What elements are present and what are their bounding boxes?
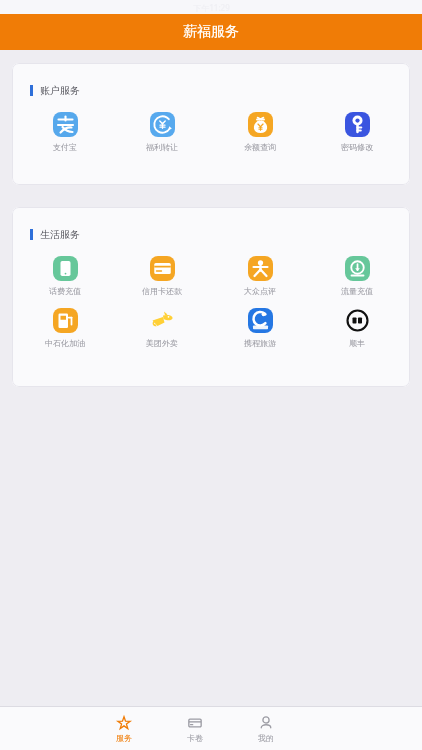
button[interactable]: 服务	[107, 715, 140, 743]
staticText: 顺丰	[349, 338, 365, 348]
button[interactable]: 美团外卖	[129, 307, 195, 348]
staticText: 流量充值	[341, 286, 373, 296]
staticText: 余额查询	[244, 142, 276, 152]
button[interactable]: 大众点评	[227, 255, 293, 296]
button[interactable]: 卡卷	[178, 715, 211, 743]
staticText: 话费充值	[49, 286, 81, 296]
button[interactable]: 密码修改	[324, 111, 390, 152]
button[interactable]: 余额查询	[227, 111, 293, 152]
button[interactable]: 福利转让	[129, 111, 195, 152]
staticText: 密码修改	[341, 142, 373, 152]
button[interactable]: 我的	[249, 715, 282, 743]
staticText: 生活服务	[40, 228, 80, 241]
staticText: 福利转让	[146, 142, 178, 152]
button[interactable]: 话费充值	[32, 255, 98, 296]
button[interactable]: 信用卡还款	[129, 255, 195, 296]
staticText: 薪福服务	[183, 23, 239, 41]
staticText: 大众点评	[244, 286, 276, 296]
staticText: 服务	[116, 733, 132, 743]
staticText: 美团外卖	[146, 338, 178, 348]
button[interactable]: 携程旅游	[227, 307, 293, 348]
button[interactable]: 流量充值	[324, 255, 390, 296]
staticText: 信用卡还款	[142, 286, 182, 296]
button[interactable]: 顺丰	[324, 307, 390, 348]
button[interactable]: 支付宝	[32, 111, 98, 152]
staticText: 支付宝	[53, 142, 77, 152]
staticText: 中石化加油	[45, 338, 85, 348]
staticText: 卡卷	[187, 733, 203, 743]
staticText: 我的	[258, 733, 274, 743]
button[interactable]: 中石化加油	[32, 307, 98, 348]
staticText: 账户服务	[40, 84, 80, 97]
staticText: 携程旅游	[244, 338, 276, 348]
